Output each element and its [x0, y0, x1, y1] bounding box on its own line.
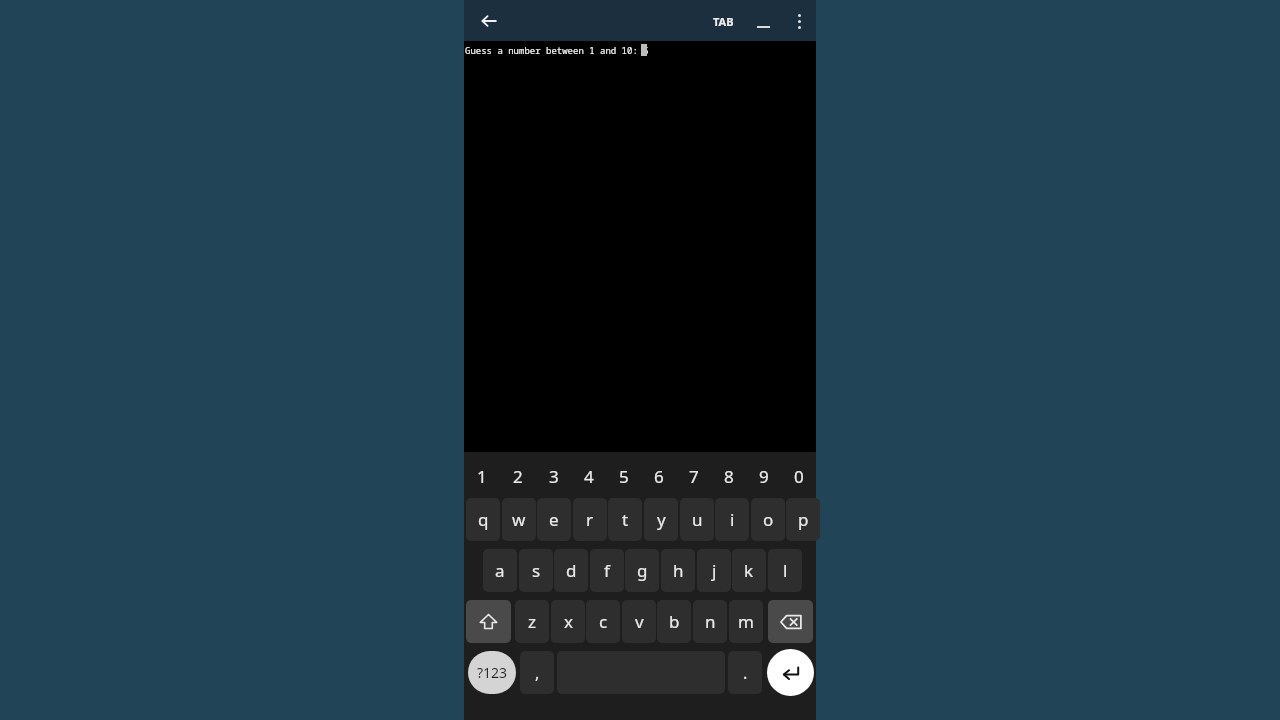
button[interactable]: 0	[781, 461, 816, 491]
button[interactable]: 5	[606, 461, 641, 491]
staticText: 5	[619, 465, 629, 488]
button[interactable]: ?123	[468, 651, 516, 694]
button[interactable]: 7	[676, 461, 711, 491]
button[interactable]: Shift	[466, 600, 511, 643]
button[interactable]: Minimize	[748, 6, 778, 36]
staticText: 3	[549, 465, 559, 488]
staticText: c	[599, 610, 608, 633]
staticText: p	[798, 508, 809, 531]
button[interactable]: More options	[784, 6, 814, 36]
staticText: TAB	[713, 14, 734, 29]
button[interactable]: m	[729, 600, 763, 643]
staticText: y	[657, 508, 666, 531]
button[interactable]: Enter	[767, 649, 814, 696]
button[interactable]: p	[786, 498, 820, 541]
button[interactable]: h	[661, 549, 695, 592]
staticText: h	[673, 559, 684, 582]
button[interactable]: f	[590, 549, 624, 592]
staticText: j	[712, 559, 717, 582]
button[interactable]: 1	[464, 461, 500, 491]
staticText: 4	[584, 465, 594, 488]
button[interactable]: o	[751, 498, 785, 541]
button[interactable]: 3	[536, 461, 571, 491]
button[interactable]: u	[680, 498, 714, 541]
staticText: d	[566, 559, 577, 582]
button[interactable]: t	[608, 498, 642, 541]
button[interactable]: y	[644, 498, 678, 541]
staticText: t	[622, 508, 629, 531]
button[interactable]: c	[586, 600, 620, 643]
button[interactable]: v	[622, 600, 656, 643]
button[interactable]: ,	[520, 651, 554, 694]
button[interactable]: s	[519, 549, 553, 592]
staticText: .	[743, 662, 748, 684]
staticText: w	[512, 508, 526, 531]
staticText: v	[635, 610, 644, 633]
button[interactable]: Back	[474, 6, 504, 36]
button[interactable]: n	[693, 600, 727, 643]
staticText: x	[564, 610, 573, 633]
button[interactable]: l	[768, 549, 802, 592]
staticText: 9	[759, 465, 769, 488]
button[interactable]: 6	[641, 461, 676, 491]
staticText: 0	[794, 465, 804, 488]
staticText: b	[669, 610, 680, 633]
staticText: 7	[689, 465, 699, 488]
staticText: Guess a number between 1 and 10: 5	[465, 44, 649, 56]
staticText: m	[738, 610, 754, 633]
button[interactable]: 4	[571, 461, 606, 491]
button[interactable]: k	[732, 549, 766, 592]
staticText: ?123	[477, 663, 508, 682]
button[interactable]: z	[515, 600, 549, 643]
staticText: 1	[477, 465, 487, 488]
staticText: e	[549, 508, 559, 531]
staticText: f	[604, 559, 610, 582]
button[interactable]: 2	[500, 461, 536, 491]
button[interactable]: a	[483, 549, 517, 592]
staticText: o	[763, 508, 774, 531]
staticText: ,	[535, 662, 540, 684]
staticText: g	[637, 559, 648, 582]
button[interactable]: .	[728, 651, 762, 694]
button[interactable]: q	[466, 498, 500, 541]
staticText: 6	[654, 465, 664, 488]
button[interactable]: TAB	[704, 6, 742, 36]
staticText: l	[783, 559, 788, 582]
staticText: s	[532, 559, 541, 582]
button[interactable]: x	[551, 600, 585, 643]
button[interactable]: b	[657, 600, 691, 643]
staticText: k	[744, 559, 754, 582]
button[interactable]: j	[697, 549, 731, 592]
button[interactable]: d	[554, 549, 588, 592]
staticText: u	[692, 508, 703, 531]
staticText: i	[730, 508, 735, 531]
button[interactable]: w	[502, 498, 536, 541]
button[interactable]: Backspace	[768, 600, 813, 643]
button[interactable]: r	[573, 498, 607, 541]
button[interactable]: g	[625, 549, 659, 592]
button[interactable]: 9	[746, 461, 781, 491]
button[interactable]: 8	[711, 461, 746, 491]
button[interactable]: e	[537, 498, 571, 541]
staticText: z	[528, 610, 536, 633]
button[interactable]: i	[715, 498, 749, 541]
staticText: q	[478, 508, 489, 531]
staticText: r	[586, 508, 594, 531]
staticText: 8	[724, 465, 734, 488]
staticText: n	[705, 610, 716, 633]
staticText: a	[495, 559, 505, 582]
staticText: 2	[513, 465, 523, 488]
